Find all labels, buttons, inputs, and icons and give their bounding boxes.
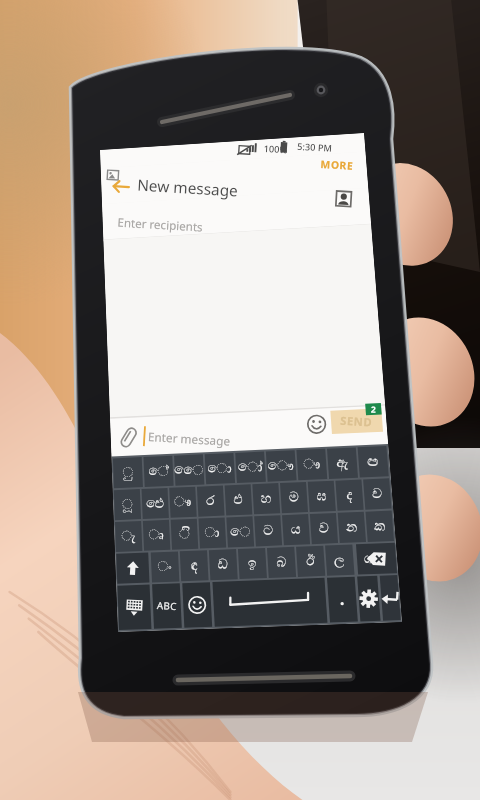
button[interactable]: Add recipient <box>330 194 366 228</box>
button[interactable] <box>146 404 306 438</box>
button[interactable]: Attach <box>112 404 144 438</box>
button[interactable] <box>104 240 382 398</box>
button[interactable]: Emoji <box>308 400 338 432</box>
button[interactable] <box>104 196 334 232</box>
button[interactable]: Keyboard <box>110 444 395 630</box>
button[interactable] <box>318 150 368 178</box>
button[interactable] <box>340 400 392 430</box>
button[interactable]: Back <box>98 158 132 188</box>
